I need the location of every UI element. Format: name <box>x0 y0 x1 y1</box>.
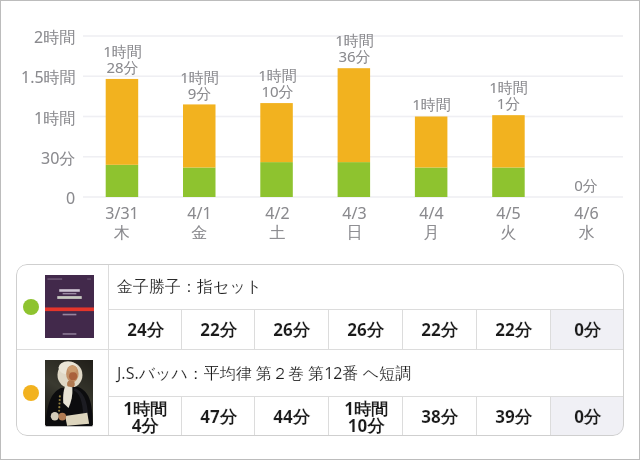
staticText: 39分 <box>495 405 532 428</box>
staticText: 1時間 10分 <box>344 397 388 435</box>
staticText: 1時間 <box>412 94 451 114</box>
staticText: 0 <box>66 187 76 209</box>
staticText: 1時間 36分 <box>335 30 374 66</box>
staticText: 1時間 4分 <box>123 397 167 435</box>
staticText: 26分 <box>273 318 310 341</box>
staticText: 4/2 土 <box>265 202 290 243</box>
staticText: 22分 <box>200 318 237 341</box>
button[interactable]: 指セットの楽譜 <box>16 264 624 349</box>
staticText: 38分 <box>421 405 458 428</box>
staticText: 22分 <box>421 318 458 341</box>
staticText: 2時間 <box>34 26 76 48</box>
staticText: 4/4 月 <box>419 202 444 243</box>
staticText: 1時間 <box>34 107 76 129</box>
staticText: 30分 <box>41 147 76 169</box>
staticText: 4/1 金 <box>187 202 212 243</box>
staticText: 1時間 28分 <box>103 41 142 77</box>
staticText: 44分 <box>273 405 310 428</box>
staticText: J.S.バッハ：平均律 第２巻 第12番 ヘ短調 <box>117 362 412 384</box>
staticText: 22分 <box>495 318 532 341</box>
other: J.S.バッハの肖像 <box>45 360 93 425</box>
staticText: 0分 <box>574 318 601 341</box>
staticText: 4/3 日 <box>342 202 367 243</box>
staticText: 0分 <box>574 405 601 428</box>
staticText: 1.5時間 <box>21 66 76 88</box>
staticText: 1時間 9分 <box>180 67 219 103</box>
staticText: 24分 <box>127 318 164 341</box>
other: 指セットの楽譜 <box>45 275 94 338</box>
staticText: 4/5 火 <box>496 202 521 243</box>
staticText: 47分 <box>200 405 237 428</box>
staticText: 3/31 木 <box>105 202 139 243</box>
staticText: 1時間 10分 <box>258 65 297 101</box>
staticText: 1時間 1分 <box>489 77 528 113</box>
staticText: 金子勝子：指セット <box>117 277 263 297</box>
staticText: 0分 <box>574 175 598 195</box>
staticText: 4/6 水 <box>574 202 599 243</box>
staticText: 26分 <box>347 318 384 341</box>
button[interactable]: J.S.バッハの肖像 <box>16 350 624 435</box>
